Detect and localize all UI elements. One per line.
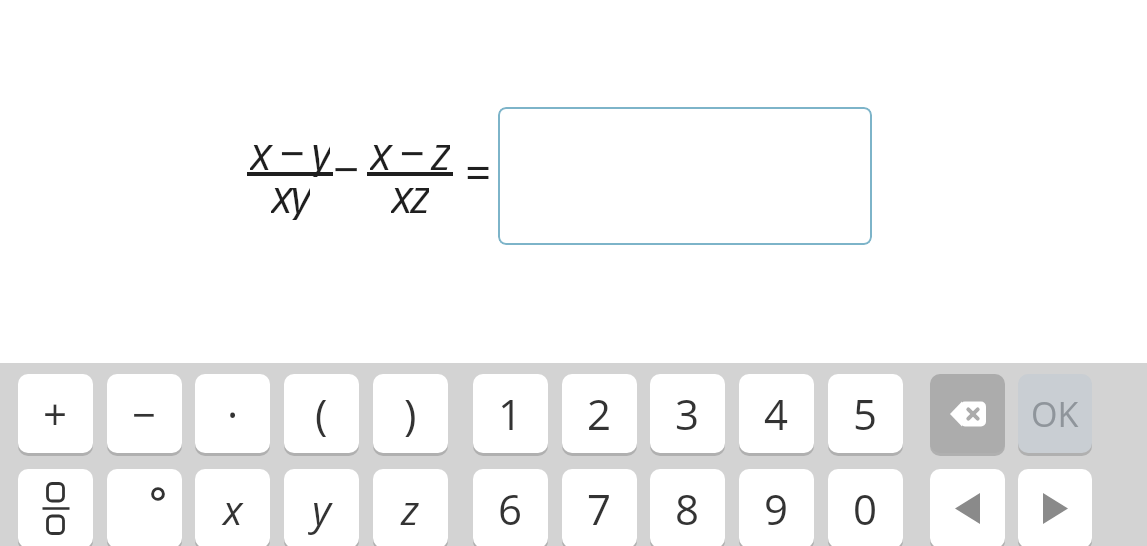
- staticText: +: [43, 385, 68, 442]
- staticText: z: [401, 481, 420, 537]
- staticText: =: [465, 140, 492, 196]
- button[interactable]: 4: [739, 374, 814, 453]
- button[interactable]: 7: [562, 469, 637, 546]
- staticText: ·: [227, 385, 239, 442]
- button[interactable]: x: [195, 469, 270, 546]
- staticText: 3: [675, 385, 700, 442]
- staticText: 4: [764, 385, 789, 442]
- staticText: 8: [675, 480, 700, 537]
- button[interactable]: +: [18, 374, 93, 453]
- button[interactable]: y: [284, 469, 359, 546]
- button[interactable]: [930, 374, 1005, 453]
- staticText: xz: [391, 164, 429, 220]
- staticText: −: [132, 385, 157, 442]
- staticText: 5: [853, 385, 878, 442]
- staticText: x − z: [370, 121, 450, 177]
- button[interactable]: [107, 469, 182, 546]
- staticText: 2: [587, 385, 612, 442]
- button[interactable]: 0: [828, 469, 903, 546]
- button[interactable]: [930, 469, 1005, 546]
- staticText: −: [333, 137, 360, 193]
- button[interactable]: 5: [828, 374, 903, 453]
- staticText: OK: [1031, 391, 1079, 437]
- staticText: xy: [271, 164, 310, 220]
- button[interactable]: [498, 107, 872, 245]
- button[interactable]: ): [373, 374, 448, 453]
- button[interactable]: (: [284, 374, 359, 453]
- button[interactable]: [1018, 469, 1092, 546]
- staticText: y: [312, 481, 331, 537]
- staticText: (: [315, 385, 328, 442]
- staticText: x: [223, 481, 243, 537]
- button[interactable]: −: [107, 374, 182, 453]
- staticText: 7: [587, 480, 612, 537]
- staticText: 1: [498, 385, 523, 442]
- button[interactable]: OK: [1018, 374, 1092, 453]
- staticText: 9: [764, 480, 789, 537]
- button[interactable]: 9: [739, 469, 814, 546]
- staticText: 0: [853, 480, 878, 537]
- button[interactable]: 3: [650, 374, 725, 453]
- button[interactable]: ·: [195, 374, 270, 453]
- staticText: 6: [498, 480, 523, 537]
- button[interactable]: 1: [473, 374, 548, 453]
- button[interactable]: 2: [562, 374, 637, 453]
- button[interactable]: 6: [473, 469, 548, 546]
- staticText: ): [404, 385, 417, 442]
- button[interactable]: 8: [650, 469, 725, 546]
- button[interactable]: [18, 469, 93, 546]
- staticText: x − y: [250, 121, 330, 177]
- button[interactable]: z: [373, 469, 448, 546]
